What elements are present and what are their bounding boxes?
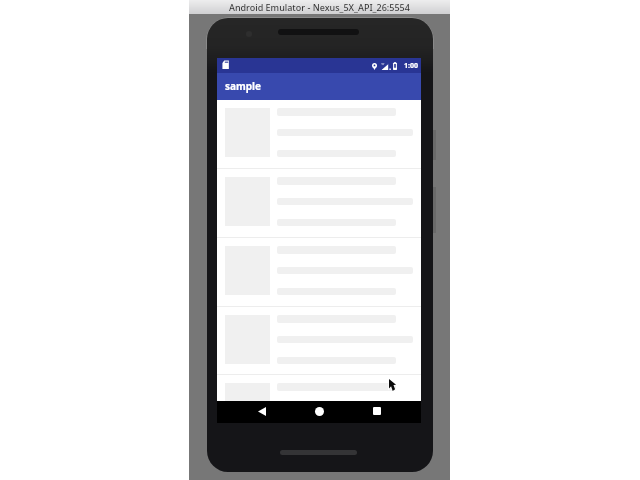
button[interactable]: Home — [301, 400, 337, 422]
button[interactable]: Recents — [359, 400, 395, 422]
staticText: sample — [225, 79, 262, 93]
button[interactable]: Back — [244, 400, 279, 422]
button[interactable] — [217, 169, 421, 237]
staticText: 1:00 — [404, 61, 418, 71]
button[interactable] — [217, 307, 421, 374]
button[interactable] — [217, 238, 421, 306]
button[interactable] — [217, 100, 421, 168]
button[interactable] — [217, 375, 421, 401]
staticText: Android Emulator - Nexus_5X_API_26:5554 — [229, 1, 410, 13]
